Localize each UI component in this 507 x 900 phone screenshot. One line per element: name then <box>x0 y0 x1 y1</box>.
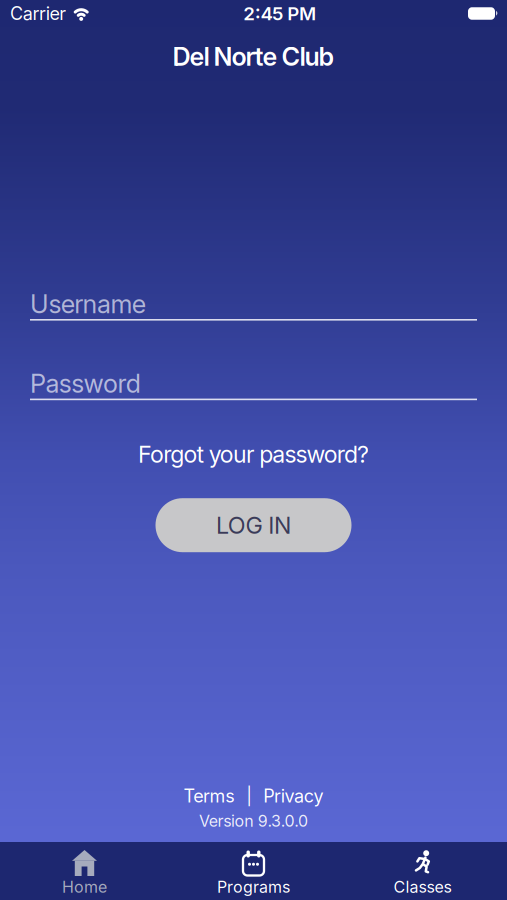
button[interactable]: Programs <box>169 850 338 894</box>
button[interactable]: LOG IN <box>155 498 351 552</box>
staticText: Carrier <box>10 3 66 24</box>
staticText: Terms <box>183 785 235 807</box>
staticText: Classes <box>393 877 451 897</box>
staticText: 2:45 PM <box>243 2 316 25</box>
button[interactable]: Terms <box>183 785 235 807</box>
button[interactable]: Privacy <box>263 785 323 807</box>
staticText: Password <box>30 368 141 399</box>
staticText: Privacy <box>263 785 323 807</box>
button[interactable]: Home <box>0 850 169 894</box>
staticText: Programs <box>217 877 290 897</box>
button[interactable]: Classes <box>338 850 507 894</box>
staticText: Del Norte Club <box>172 41 334 72</box>
staticText: LOG IN <box>216 511 291 539</box>
staticText: Forgot your password? <box>138 440 369 468</box>
staticText: Username <box>30 289 146 319</box>
staticText: Version 9.3.0.0 <box>199 811 308 831</box>
button[interactable]: Forgot your password? <box>138 442 369 466</box>
staticText: | <box>246 785 252 806</box>
staticText: Home <box>62 877 107 897</box>
